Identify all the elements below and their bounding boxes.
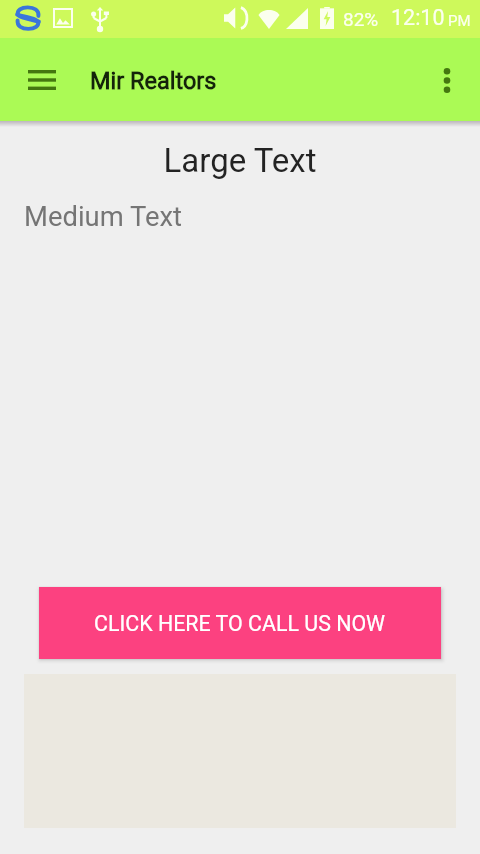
button[interactable]: More options [419,52,475,108]
staticText: Mir Realtors [90,67,217,95]
staticText: 12:10 [391,5,445,30]
staticText: 82% [343,8,379,30]
staticText: PM [448,12,471,30]
button[interactable]: CLICK HERE TO CALL US NOW [39,587,441,659]
staticText: Large Text [0,141,480,180]
staticText: Medium Text [24,201,183,233]
button[interactable]: Open navigation drawer [14,52,70,108]
staticText: CLICK HERE TO CALL US NOW [94,611,386,636]
